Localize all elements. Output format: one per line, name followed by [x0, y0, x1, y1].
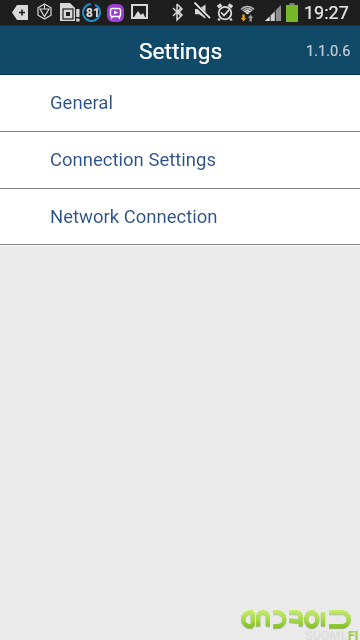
staticText: 1.1.0.6 — [306, 42, 351, 59]
button[interactable]: Connection Settings — [0, 132, 360, 188]
staticText: Connection Settings — [50, 149, 216, 171]
staticText: SUOMI. — [305, 628, 348, 640]
button[interactable]: Network Connection — [0, 189, 360, 244]
staticText: FI — [348, 628, 359, 640]
staticText: General — [50, 92, 113, 114]
staticText: 81 — [86, 6, 100, 20]
staticText: Settings — [139, 38, 223, 65]
staticText: Network Connection — [50, 206, 218, 228]
button[interactable]: General — [0, 75, 360, 131]
staticText: 19:27 — [304, 2, 349, 23]
